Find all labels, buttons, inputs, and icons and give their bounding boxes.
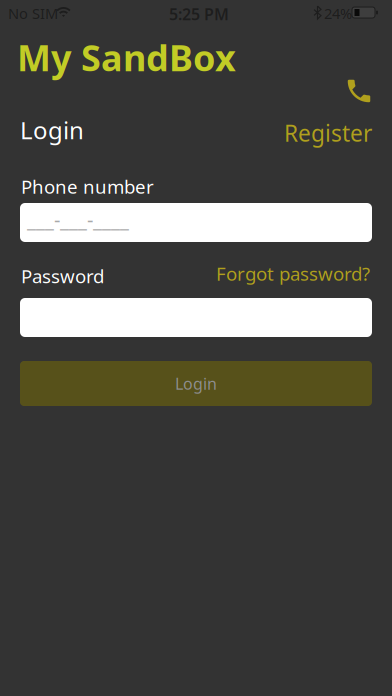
staticText: 5:25 PM [169,3,229,25]
button[interactable]: Register [284,118,372,148]
button[interactable] [344,76,374,106]
button[interactable]: ___-___-____ [20,203,372,242]
staticText: Forgot password? [216,261,370,286]
staticText: Login [175,373,217,394]
staticText: Password [21,263,104,288]
staticText: No SIM [8,3,58,23]
staticText: Register [284,118,372,148]
staticText: Login [20,114,84,146]
button[interactable]: Login [20,361,372,406]
button[interactable] [20,298,372,337]
staticText: ___-___-____ [27,206,129,233]
staticText: Phone number [21,174,154,199]
button[interactable]: Forgot password? [216,261,370,286]
staticText: My SandBox [17,33,236,81]
staticText: 24% [324,3,352,23]
